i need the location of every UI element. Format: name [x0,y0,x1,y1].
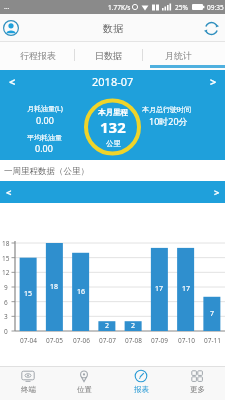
staticText: 行程报表 [20,50,56,61]
staticText: 07-11 [204,336,221,345]
staticText: 10时20分 [149,115,188,127]
staticText: 本月里程 [98,108,128,117]
staticText: > [210,74,217,89]
staticText: 月统计 [165,50,192,61]
staticText: 07-06 [73,336,90,345]
staticText: 0 [4,327,8,336]
staticText: 15 [24,289,33,299]
staticText: 本月总行驶时间 [142,105,191,114]
staticText: 09:35 [207,3,224,12]
staticText: 0.00 [35,142,53,154]
staticText: 更多 [190,385,205,394]
button[interactable] [195,181,225,203]
staticText: 07-07 [99,336,116,345]
staticText: 18 [2,239,10,248]
staticText: 18 [50,282,59,292]
staticText: 132 [100,117,126,137]
staticText: 6 [4,298,8,307]
button[interactable] [203,72,223,90]
staticText: 0.00 [36,114,54,126]
staticText: 15 [2,254,10,263]
staticText: 07-09 [151,336,168,345]
staticText: 3 [4,312,8,321]
staticText: 平均耗油量 [27,133,62,142]
button[interactable] [0,181,30,203]
staticText: < [9,74,16,89]
button[interactable] [0,366,56,400]
button[interactable] [56,366,112,400]
staticText: 日数据 [95,50,122,61]
button[interactable] [203,20,220,37]
staticText: 公里 [106,139,121,148]
staticText: 月耗油量(L) [27,104,63,114]
staticText: 25% [175,3,188,12]
staticText: 17 [155,284,164,294]
button[interactable] [75,42,150,70]
staticText: 一周里程数据（公里） [4,166,89,177]
staticText: 数据 [103,22,123,35]
button[interactable] [169,366,225,400]
staticText: 07-05 [46,336,63,345]
staticText: 12 [2,268,10,277]
button[interactable] [113,366,169,400]
staticText: 报表 [134,385,149,394]
staticText: 9 [4,283,8,292]
button[interactable] [0,42,75,70]
staticText: > [214,186,220,199]
staticText: 2 [131,321,136,331]
staticText: 07-10 [178,336,195,345]
button[interactable] [2,72,22,90]
staticText: 2018-07 [92,74,134,89]
staticText: 7 [210,309,215,319]
staticText: 2 [105,321,110,331]
staticText: 16 [77,287,86,297]
staticText: < [6,186,12,199]
button[interactable] [3,20,19,36]
staticText: … [4,2,10,12]
staticText: 终端 [21,385,36,394]
staticText: 17 [182,284,191,294]
staticText: 1.77K/s [108,3,131,12]
button[interactable] [150,42,225,70]
staticText: 07-08 [125,336,142,345]
staticText: 07-04 [20,336,37,345]
staticText: 位置 [77,385,92,394]
